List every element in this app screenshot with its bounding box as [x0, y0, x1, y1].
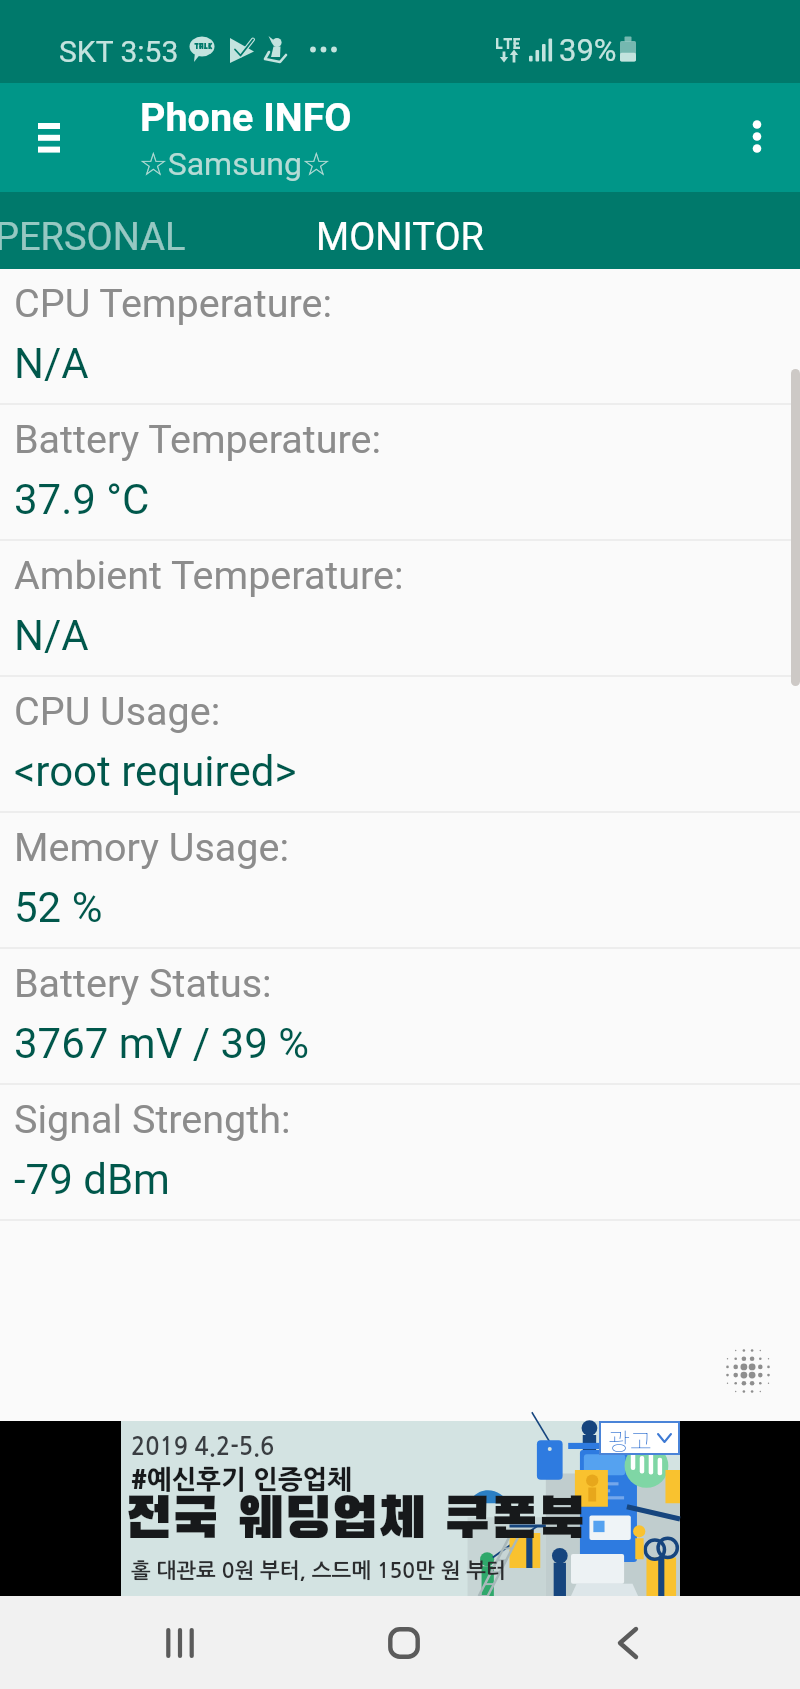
button[interactable]: More options	[714, 83, 800, 192]
staticText: 39%	[559, 32, 617, 68]
staticText: -79 dBm	[14, 1155, 170, 1204]
button[interactable]: Battery Temperature:	[0, 405, 800, 541]
staticText: Battery Status:	[14, 960, 272, 1006]
button[interactable]: Back	[581, 1596, 675, 1689]
staticText: Battery Temperature:	[14, 416, 382, 462]
button[interactable]: PERSONAL	[0, 192, 245, 269]
button[interactable]: Ambient Temperature:	[0, 541, 800, 677]
button[interactable]: Battery Status:	[0, 949, 800, 1085]
button[interactable]: CPU Temperature:	[0, 269, 800, 405]
button[interactable]: 2019 4.2-5.6	[121, 1421, 680, 1596]
staticText: #예신후기 인증업체	[131, 1466, 353, 1492]
staticText: 홀 대관료 0원 부터, 스드메 150만 원 부터	[131, 1560, 506, 1581]
staticText: Signal Strength:	[14, 1096, 291, 1142]
staticText: ☆Samsung☆	[139, 145, 331, 183]
staticText: 37.9 °C	[14, 475, 150, 524]
staticText: N/A	[14, 611, 89, 660]
staticText: <root required>	[14, 747, 297, 796]
staticText: Phone INFO	[140, 94, 352, 140]
staticText: 52 %	[14, 883, 103, 932]
staticText: SKT 3:53	[59, 34, 179, 69]
staticText: CPU Temperature:	[14, 280, 332, 326]
staticText: CPU Usage:	[14, 688, 221, 734]
staticText: N/A	[14, 339, 89, 388]
button[interactable]: Home	[357, 1596, 451, 1689]
staticText: PERSONAL	[0, 215, 186, 260]
button[interactable]: Open navigation drawer	[0, 83, 98, 192]
staticText: 2019 4.2-5.6	[131, 1435, 275, 1458]
button[interactable]: CPU Usage:	[0, 677, 800, 813]
staticText: 전국 웨딩업체 쿠폰북	[126, 1493, 586, 1550]
staticText: MONITOR	[316, 215, 484, 260]
staticText: Ambient Temperature:	[14, 552, 404, 598]
staticText: 광고	[608, 1422, 653, 1454]
button[interactable]: MONITOR	[245, 192, 555, 269]
button[interactable]: Signal Strength:	[0, 1085, 800, 1221]
button[interactable]: Memory Usage:	[0, 813, 800, 949]
button[interactable]: Recent apps	[133, 1596, 227, 1689]
staticText: Memory Usage:	[14, 824, 289, 870]
staticText: 3767 mV / 39 %	[14, 1019, 309, 1068]
button[interactable]: 광고	[600, 1422, 679, 1454]
